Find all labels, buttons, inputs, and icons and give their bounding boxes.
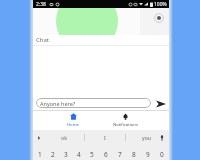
button[interactable]: Voice input — [155, 130, 169, 145]
button[interactable]: Send — [154, 97, 167, 110]
button[interactable]: 4 — [72, 145, 85, 160]
button[interactable]: 6 — [99, 145, 113, 160]
button[interactable]: Anyone here? — [36, 98, 151, 108]
staticText: 4 — [77, 150, 81, 159]
staticText: Anyone here? — [40, 100, 76, 107]
staticText: you — [142, 134, 151, 141]
button[interactable]: 7 — [113, 145, 127, 160]
staticText: 1 — [38, 150, 42, 159]
staticText: 100% — [154, 1, 167, 8]
staticText: Notifications — [113, 122, 138, 128]
staticText: 8 — [132, 150, 136, 159]
button[interactable]: ok — [44, 130, 84, 145]
button[interactable]: 5 — [85, 145, 99, 160]
staticText: 2:38 — [36, 1, 46, 8]
staticText: I — [104, 134, 106, 141]
staticText: Home — [67, 122, 79, 128]
button[interactable]: Home — [53, 111, 93, 130]
button[interactable]: 0 — [155, 145, 169, 160]
button[interactable]: 8 — [127, 145, 141, 160]
staticText: 9 — [146, 150, 150, 159]
staticText: ok — [61, 134, 67, 141]
button[interactable]: 9 — [141, 145, 155, 160]
staticText: 2 — [51, 150, 55, 159]
button[interactable]: More suggestions — [34, 130, 44, 145]
button[interactable]: 2 — [46, 145, 59, 160]
staticText: 6 — [104, 150, 108, 159]
button[interactable]: Loading — [153, 12, 165, 24]
staticText: Chat — [36, 36, 50, 44]
button[interactable]: I — [85, 130, 125, 145]
staticText: 7 — [118, 150, 122, 159]
button[interactable]: you — [126, 130, 166, 145]
staticText: 3 — [64, 150, 68, 159]
button[interactable]: Notifications — [102, 111, 149, 130]
button[interactable]: 3 — [59, 145, 72, 160]
button[interactable]: 1 — [33, 145, 46, 160]
staticText: 0 — [160, 150, 164, 159]
staticText: 5 — [90, 150, 94, 159]
